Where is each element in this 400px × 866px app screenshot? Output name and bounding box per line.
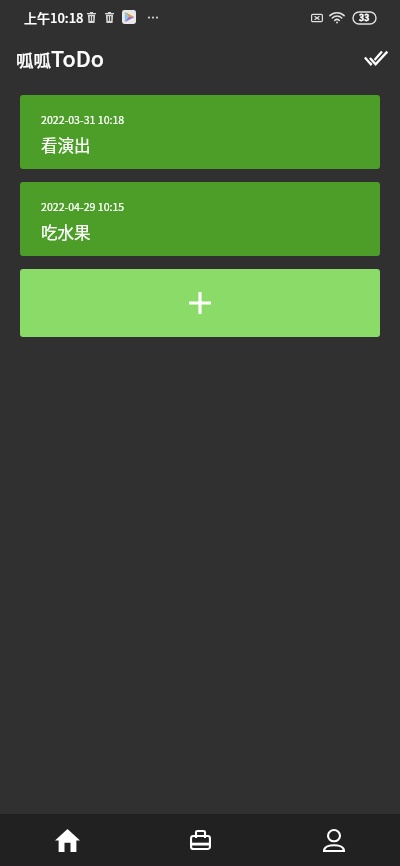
button[interactable]: Add task (20, 269, 380, 337)
staticText: 吃水果 (41, 220, 91, 244)
button[interactable]: 2022-03-31 10:18 (20, 95, 380, 169)
button[interactable]: Mark all done (358, 40, 394, 76)
staticText: 看演出 (41, 133, 91, 157)
button[interactable]: 2022-04-29 10:15 (20, 182, 380, 256)
staticText: 呱呱ToDo (16, 42, 104, 73)
staticText: 2022-04-29 10:15 (41, 199, 125, 214)
staticText: 33 (359, 11, 370, 24)
button[interactable]: Home (0, 814, 134, 866)
button[interactable]: Work (134, 814, 267, 866)
button[interactable]: Profile (267, 814, 400, 866)
staticText: 2022-03-31 10:18 (41, 112, 125, 127)
staticText: 上午10:18 (24, 8, 84, 27)
